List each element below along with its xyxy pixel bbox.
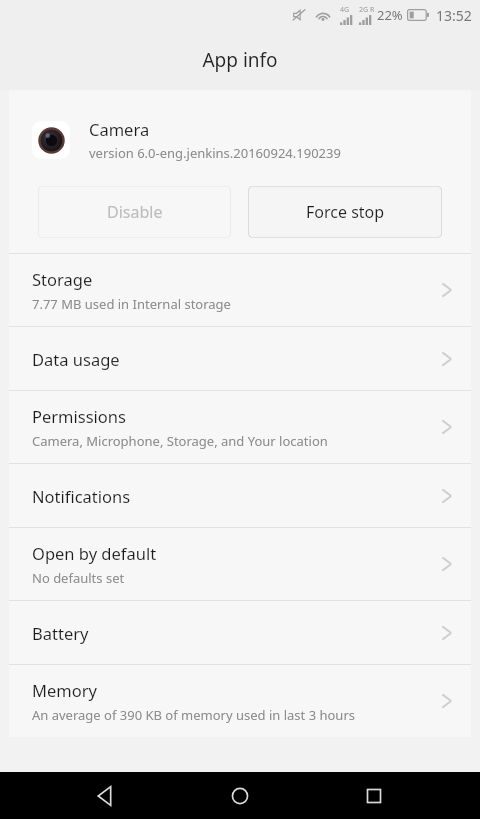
staticText: Notifications: [32, 485, 131, 507]
staticText: 2G: [359, 5, 369, 15]
button[interactable]: Notifications: [9, 464, 471, 527]
staticText: Data usage: [32, 348, 120, 370]
staticText: 22%: [377, 6, 403, 24]
button[interactable]: Battery: [9, 601, 471, 664]
staticText: version 6.0-eng.jenkins.20160924.190239: [89, 144, 341, 162]
button[interactable]: Recents: [346, 772, 402, 819]
staticText: Permissions: [32, 405, 126, 427]
button[interactable]: Force stop: [248, 186, 442, 238]
staticText: An average of 390 KB of memory used in l…: [32, 706, 355, 724]
staticText: Camera: [89, 118, 150, 140]
button[interactable]: Storage: [9, 254, 471, 326]
button[interactable]: Open by default: [9, 528, 471, 600]
button[interactable]: Data usage: [9, 327, 471, 390]
staticText: 7.77 MB used in Internal storage: [32, 295, 231, 313]
staticText: No defaults set: [32, 569, 125, 587]
staticText: R: [370, 5, 375, 15]
staticText: Memory: [32, 679, 97, 701]
staticText: Disable: [107, 201, 163, 223]
button[interactable]: Memory: [9, 665, 471, 737]
staticText: 4G: [340, 5, 350, 15]
staticText: App info: [202, 47, 278, 73]
staticText: 13:52: [436, 6, 472, 25]
button[interactable]: Home: [212, 772, 268, 819]
staticText: Camera, Microphone, Storage, and Your lo…: [32, 432, 328, 450]
staticText: Open by default: [32, 542, 157, 564]
button[interactable]: Disable: [38, 186, 231, 238]
button[interactable]: Back: [78, 772, 134, 819]
button[interactable]: Permissions: [9, 391, 471, 463]
staticText: Force stop: [306, 201, 385, 223]
staticText: Battery: [32, 622, 89, 644]
staticText: Storage: [32, 268, 93, 290]
